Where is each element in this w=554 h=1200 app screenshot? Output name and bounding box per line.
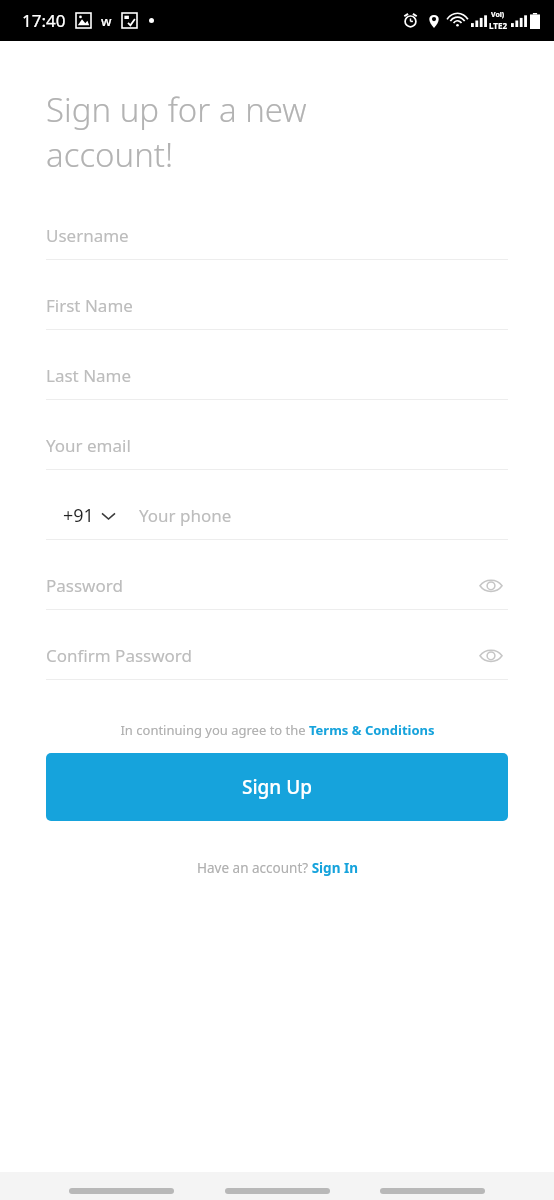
staticText: +91 (63, 503, 94, 528)
button[interactable]: Navigation button (69, 1188, 174, 1194)
staticText: Username (46, 224, 129, 247)
button[interactable]: Show password (474, 568, 508, 602)
button[interactable]: Have an account? Sign In (46, 859, 508, 877)
staticText: Sign Up (242, 774, 313, 800)
staticText: Password (46, 574, 123, 597)
staticText: Your email (46, 434, 131, 457)
button[interactable]: +91 (46, 503, 121, 528)
button[interactable]: Username (46, 211, 508, 259)
button[interactable]: In continuing you agree to the Terms & C… (46, 721, 508, 739)
staticText: Have an account? Sign In (197, 859, 358, 877)
button[interactable]: Navigation button (380, 1188, 485, 1194)
button[interactable]: First Name (46, 281, 508, 329)
staticText: 17:40 (22, 9, 66, 32)
button[interactable]: Navigation button (225, 1188, 330, 1194)
staticText: First Name (46, 294, 133, 317)
staticText: In continuing you agree to the Terms & C… (120, 721, 435, 739)
button[interactable]: Password (46, 561, 508, 609)
staticText: Sign up for a new account! (46, 87, 307, 177)
button[interactable]: Show password (474, 638, 508, 672)
button[interactable]: Last Name (46, 351, 508, 399)
button[interactable]: Your email (46, 421, 508, 469)
staticText: LTE2 (489, 20, 507, 31)
button[interactable]: Sign Up (46, 753, 508, 821)
staticText: Vol) (491, 10, 505, 20)
staticText: w (101, 12, 112, 30)
staticText: Your phone (139, 504, 232, 527)
staticText: Confirm Password (46, 644, 192, 667)
staticText: Last Name (46, 364, 132, 387)
button[interactable]: Confirm Password (46, 631, 508, 679)
button[interactable]: Your phone (139, 504, 508, 527)
